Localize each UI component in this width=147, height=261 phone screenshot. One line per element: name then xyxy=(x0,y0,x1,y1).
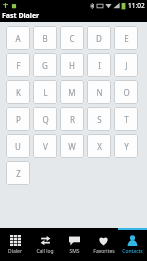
button[interactable]: R xyxy=(60,107,84,131)
button[interactable]: Y xyxy=(114,134,138,158)
staticText: Z xyxy=(16,168,21,179)
staticText: H xyxy=(69,60,75,71)
staticText: V xyxy=(43,141,48,152)
staticText: X xyxy=(97,141,102,152)
button[interactable]: K xyxy=(6,80,30,104)
button[interactable]: W xyxy=(60,134,84,158)
staticText: R xyxy=(70,114,75,125)
staticText: I xyxy=(98,60,101,71)
button[interactable]: P xyxy=(6,107,30,131)
button[interactable]: E xyxy=(114,26,138,50)
staticText: W xyxy=(68,141,76,152)
button[interactable]: T xyxy=(114,107,138,131)
button[interactable]: J xyxy=(114,53,138,77)
staticText: P xyxy=(16,114,21,125)
staticText: B xyxy=(42,33,48,44)
button[interactable]: Call log xyxy=(30,228,60,261)
staticText: D xyxy=(96,33,102,44)
button[interactable]: V xyxy=(33,134,57,158)
button[interactable]: B xyxy=(33,26,57,50)
staticText: C xyxy=(69,33,75,44)
staticText: U xyxy=(15,141,21,152)
staticText: F xyxy=(16,60,21,71)
button[interactable]: Q xyxy=(33,107,57,131)
staticText: M xyxy=(68,87,76,98)
staticText: K xyxy=(16,87,21,98)
button[interactable]: M xyxy=(60,80,84,104)
staticText: Favorites xyxy=(93,248,115,255)
button[interactable]: H xyxy=(60,53,84,77)
button[interactable]: C xyxy=(60,26,84,50)
staticText: T xyxy=(124,114,129,125)
button[interactable]: A xyxy=(6,26,30,50)
staticText: J xyxy=(125,60,128,71)
button[interactable]: G xyxy=(33,53,57,77)
staticText: Q xyxy=(42,114,49,125)
staticText: Contacts xyxy=(122,248,143,255)
staticText: G xyxy=(42,60,48,71)
button[interactable]: S xyxy=(87,107,111,131)
staticText: L xyxy=(43,87,48,98)
button[interactable]: Dialer xyxy=(0,228,30,261)
button[interactable]: N xyxy=(87,80,111,104)
button[interactable]: SMS xyxy=(60,228,89,261)
button[interactable]: D xyxy=(87,26,111,50)
staticText: Y xyxy=(124,141,129,152)
staticText: S xyxy=(97,114,102,125)
button[interactable]: Favorites xyxy=(89,228,118,261)
button[interactable]: Z xyxy=(6,161,30,185)
staticText: Dialer xyxy=(8,248,22,255)
staticText: Fast Dialer xyxy=(2,11,40,21)
button[interactable]: O xyxy=(114,80,138,104)
button[interactable]: L xyxy=(33,80,57,104)
staticText: N xyxy=(96,87,103,98)
staticText: 11:02 xyxy=(128,1,145,10)
staticText: E xyxy=(124,33,129,44)
staticText: SMS xyxy=(69,248,80,255)
button[interactable]: F xyxy=(6,53,30,77)
button[interactable]: Contacts xyxy=(118,228,147,261)
button[interactable]: I xyxy=(87,53,111,77)
staticText: Call log xyxy=(36,248,54,255)
button[interactable]: U xyxy=(6,134,30,158)
staticText: O xyxy=(123,87,130,98)
button[interactable]: X xyxy=(87,134,111,158)
staticText: A xyxy=(15,33,21,44)
